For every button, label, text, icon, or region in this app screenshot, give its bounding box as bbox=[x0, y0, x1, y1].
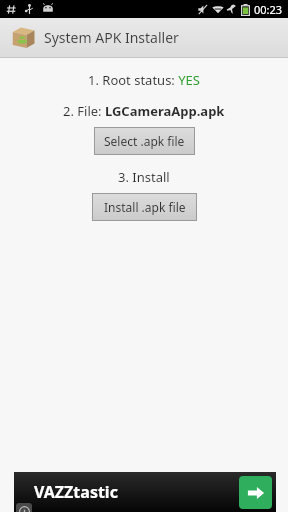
staticText: System APK Installer bbox=[44, 28, 179, 47]
button[interactable]: VAZZtastic bbox=[14, 472, 276, 512]
button[interactable]: Install .apk file bbox=[93, 194, 196, 220]
button[interactable]: Select .apk file bbox=[95, 128, 194, 154]
staticText: Install .apk file bbox=[104, 199, 186, 215]
button[interactable]: Ad info bbox=[16, 503, 32, 512]
staticText: 1. Root status: YES bbox=[88, 71, 200, 89]
staticText: 00:23 bbox=[254, 2, 283, 17]
staticText: 2. File: LGCameraApp.apk bbox=[63, 102, 225, 120]
button[interactable]: Open ad bbox=[239, 476, 272, 509]
staticText: 3. Install bbox=[118, 168, 170, 186]
staticText: VAZZtastic bbox=[34, 481, 118, 503]
staticText: Select .apk file bbox=[104, 133, 185, 149]
